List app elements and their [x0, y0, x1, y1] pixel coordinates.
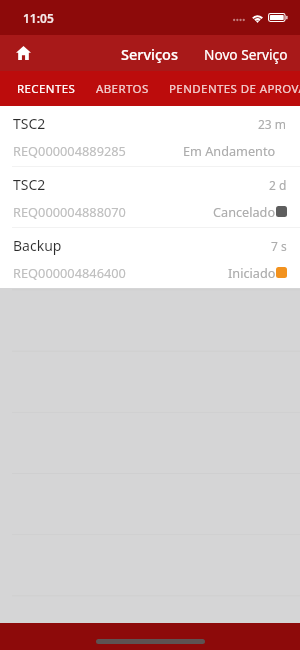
staticText: PENDENTES DE APROVAÇÃO — [169, 81, 290, 96]
staticText: 7 s — [271, 238, 287, 254]
button[interactable]: Novo Serviço — [193, 37, 300, 70]
staticText: Cancelado — [213, 203, 276, 220]
staticText: Iniciado — [228, 264, 276, 281]
staticText: REQ000004888070 — [13, 203, 126, 220]
staticText: 23 m — [258, 116, 287, 132]
button[interactable]: Backup — [0, 228, 300, 288]
staticText: REQ000004846400 — [13, 264, 126, 281]
staticText: Novo Serviço — [204, 45, 288, 64]
staticText: 11:05 — [23, 10, 54, 26]
staticText: Backup — [13, 236, 62, 255]
staticText: REQ000004889285 — [13, 142, 126, 159]
button[interactable]: PENDENTES DE APROVAÇÃO — [159, 71, 300, 106]
button[interactable]: Home — [7, 37, 39, 69]
staticText: Serviços — [121, 44, 179, 64]
button[interactable]: TSC2 — [0, 167, 300, 227]
staticText: ABERTOS — [96, 81, 149, 96]
staticText: TSC2 — [13, 175, 46, 194]
staticText: TSC2 — [13, 114, 46, 133]
button[interactable]: TSC2 — [0, 106, 300, 166]
staticText: RECENTES — [17, 81, 76, 96]
staticText: Em Andamento — [183, 142, 276, 159]
button[interactable]: RECENTES — [7, 71, 86, 106]
staticText: 2 d — [269, 177, 287, 193]
button[interactable]: ABERTOS — [86, 71, 159, 106]
